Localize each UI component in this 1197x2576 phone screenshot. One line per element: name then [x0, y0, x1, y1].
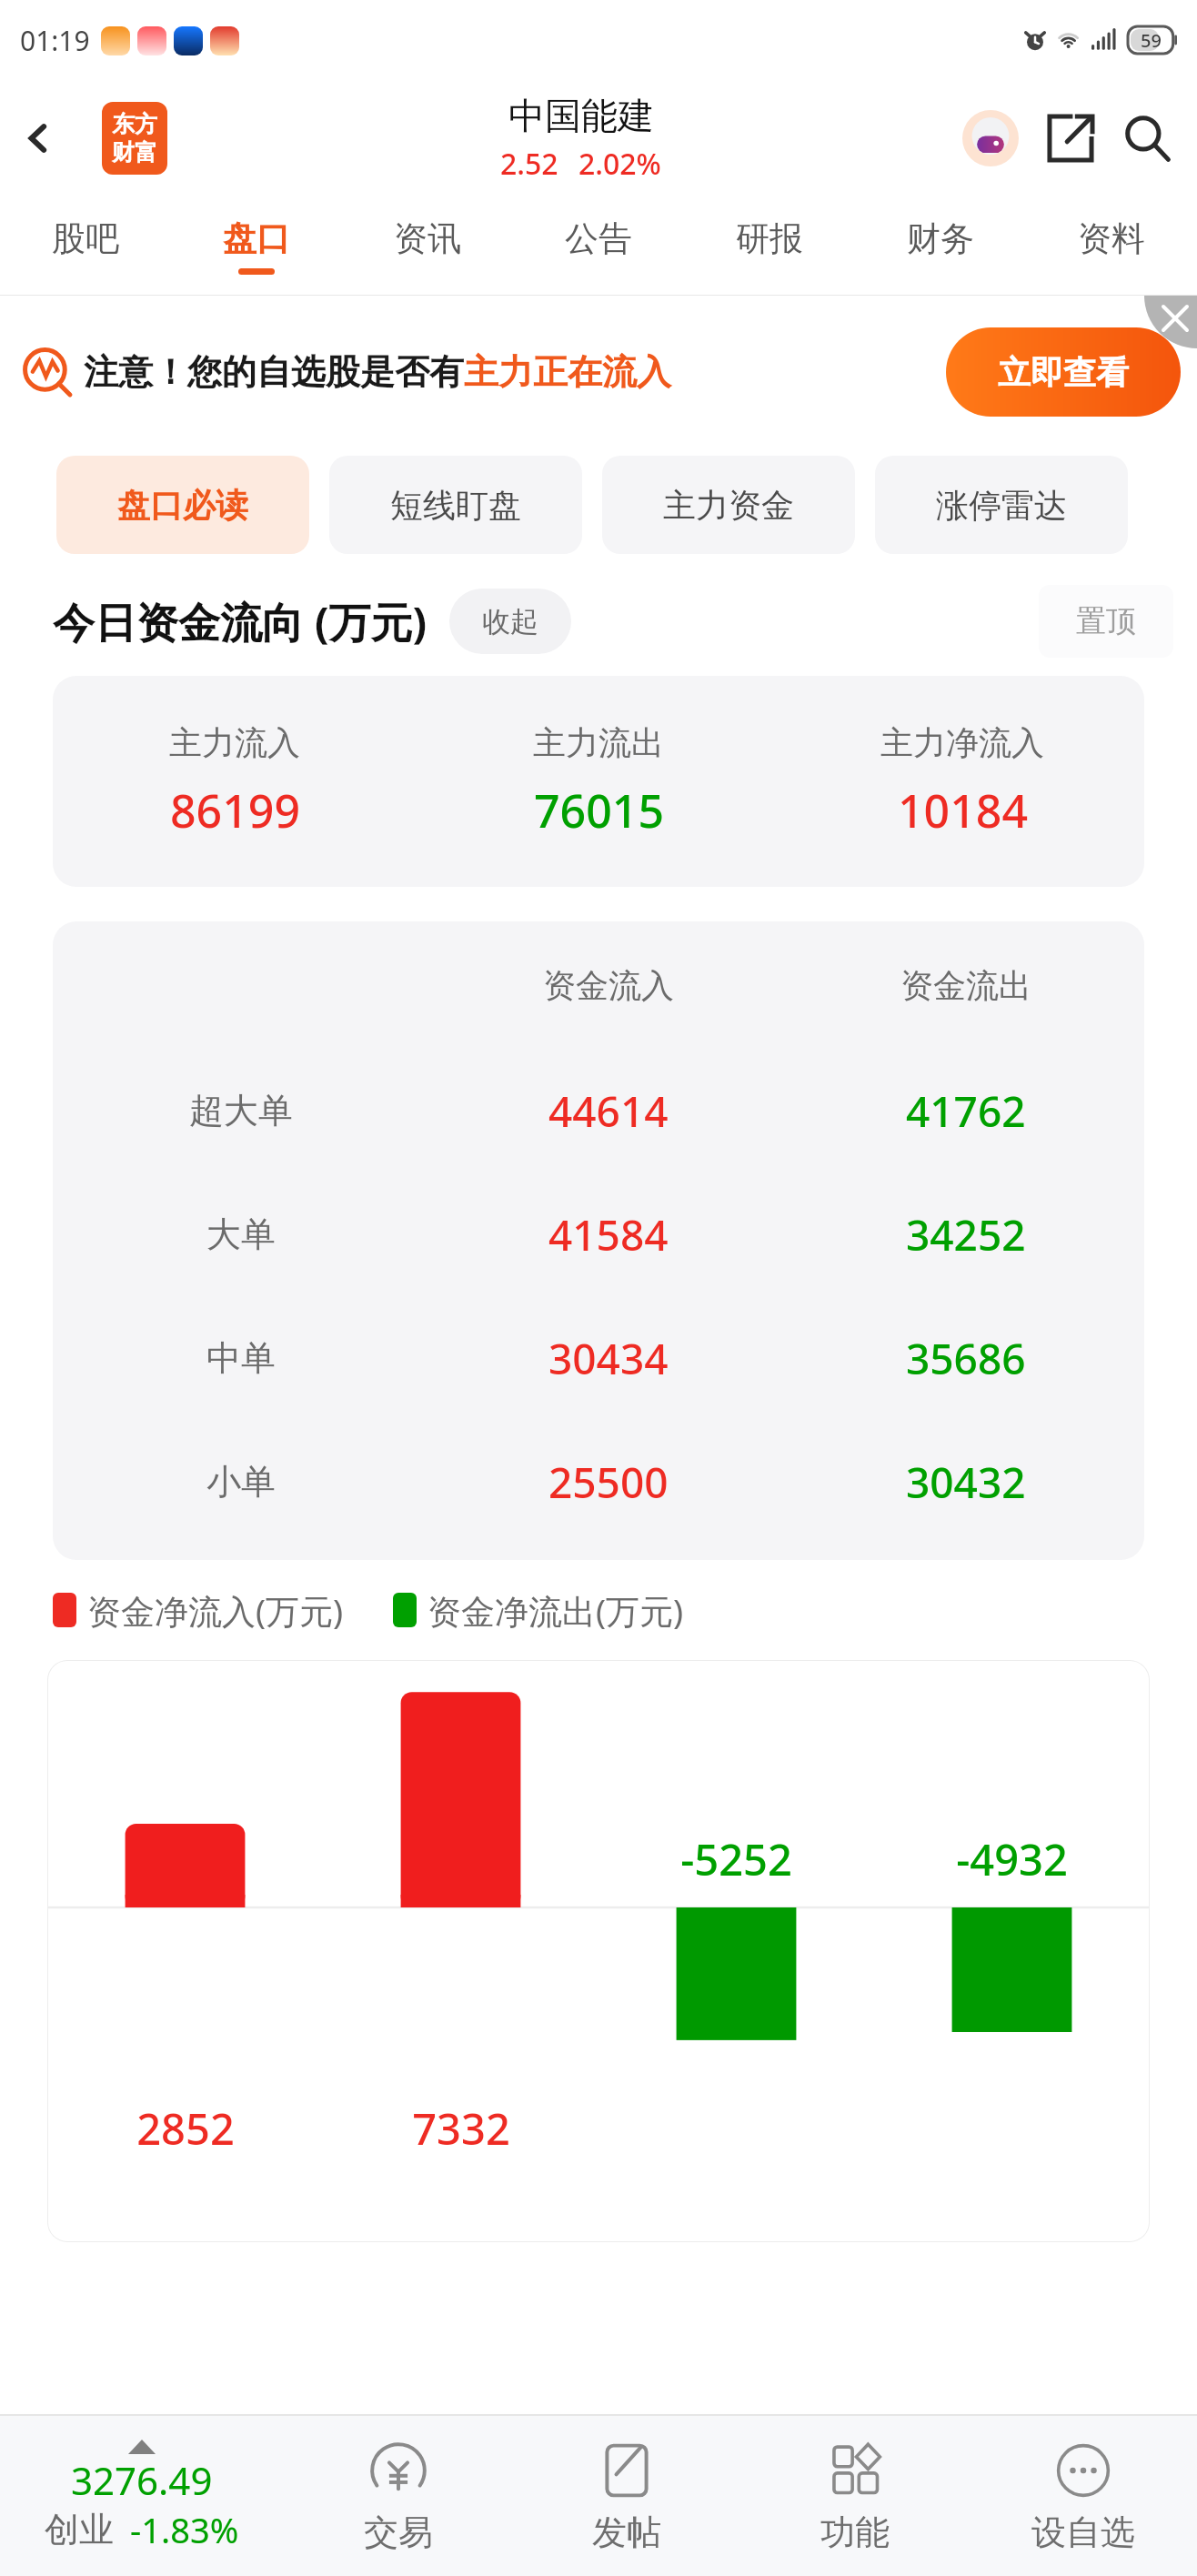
- staticText: 主力资金: [663, 485, 794, 526]
- button[interactable]: Back: [9, 109, 67, 167]
- button[interactable]: 涨停雷达: [875, 456, 1128, 554]
- staticText: 研报: [736, 217, 803, 260]
- staticText: 资金净流出(万元): [427, 1587, 684, 1634]
- staticText: 小单: [206, 1460, 276, 1504]
- button[interactable]: 收起: [449, 589, 571, 654]
- staticText: 7332: [412, 2099, 510, 2158]
- button[interactable]: 盘口必读: [56, 456, 309, 554]
- staticText: 2.52: [500, 144, 558, 184]
- staticText: 中国能建: [508, 93, 654, 138]
- staticText: 01:19: [20, 22, 90, 59]
- button[interactable]: 研报: [684, 196, 855, 295]
- staticText: 主力流出: [533, 722, 664, 763]
- staticText: 资金净流入(万元): [87, 1587, 344, 1634]
- button[interactable]: 股吧: [0, 196, 171, 295]
- staticText: 10184: [898, 780, 1028, 841]
- staticText: 2.02%: [578, 144, 661, 184]
- staticText: 30434: [548, 1330, 669, 1387]
- staticText: 设自选: [1031, 2511, 1135, 2554]
- staticText: 41584: [548, 1206, 669, 1263]
- staticText: 资料: [1078, 217, 1145, 260]
- button[interactable]: 交易: [284, 2416, 512, 2576]
- staticText: 盘口必读: [117, 485, 248, 526]
- staticText: -1.83%: [130, 2506, 239, 2553]
- staticText: 资金流入: [543, 965, 674, 1006]
- button[interactable]: 功能: [740, 2416, 969, 2576]
- button[interactable]: 短线盯盘: [329, 456, 582, 554]
- staticText: 44614: [548, 1082, 669, 1140]
- staticText: 34252: [906, 1206, 1026, 1263]
- button[interactable]: 资讯: [342, 196, 513, 295]
- button[interactable]: 公告: [513, 196, 684, 295]
- staticText: 中单: [206, 1336, 276, 1380]
- button[interactable]: 小单: [53, 1420, 1144, 1544]
- staticText: 置顶: [1076, 602, 1136, 640]
- staticText: 86199: [170, 780, 300, 841]
- staticText: -5252: [680, 1830, 792, 1888]
- button[interactable]: 东方财富: [102, 102, 167, 175]
- staticText: 资讯: [394, 217, 461, 260]
- button[interactable]: 盘口: [171, 196, 342, 295]
- staticText: 35686: [906, 1330, 1026, 1387]
- staticText: 30432: [906, 1454, 1026, 1511]
- staticText: 发帖: [592, 2511, 661, 2554]
- staticText: 收起: [482, 604, 538, 639]
- button[interactable]: Share: [1039, 106, 1102, 170]
- button[interactable]: 超大单: [53, 1049, 1144, 1172]
- staticText: 大单: [206, 1213, 276, 1256]
- staticText: 涨停雷达: [936, 485, 1067, 526]
- staticText: 2852: [136, 2099, 235, 2158]
- staticText: 76015: [534, 780, 664, 841]
- staticText: 财务: [907, 217, 974, 260]
- button[interactable]: 3276.49: [0, 2416, 284, 2576]
- button[interactable]: 大单: [53, 1172, 1144, 1296]
- staticText: -4932: [956, 1830, 1068, 1888]
- button[interactable]: 立即查看: [946, 327, 1181, 417]
- button[interactable]: 主力资金: [602, 456, 855, 554]
- staticText: 主力净流入: [880, 722, 1044, 763]
- staticText: 东方: [112, 110, 157, 138]
- button[interactable]: 财务: [855, 196, 1026, 295]
- staticText: 公告: [565, 217, 632, 260]
- staticText: 短线盯盘: [390, 485, 521, 526]
- staticText: 交易: [364, 2511, 433, 2554]
- staticText: 功能: [820, 2511, 890, 2554]
- staticText: 超大单: [189, 1089, 293, 1132]
- staticText: 25500: [548, 1454, 669, 1511]
- button[interactable]: 主力流入: [53, 676, 1144, 887]
- staticText: 注意！您的自选股是否有: [84, 350, 464, 394]
- staticText: 立即查看: [998, 352, 1129, 393]
- staticText: 盘口: [223, 217, 290, 260]
- button[interactable]: 设自选: [969, 2416, 1197, 2576]
- staticText: 创业: [45, 2508, 114, 2551]
- staticText: 今日资金流向 (万元): [53, 593, 427, 650]
- staticText: 41762: [906, 1082, 1026, 1140]
- button[interactable]: 中单: [53, 1296, 1144, 1420]
- staticText: 主力正在流入: [464, 350, 671, 394]
- button[interactable]: 资料: [1026, 196, 1197, 295]
- staticText: 财富: [112, 138, 157, 166]
- button[interactable]: 置顶: [1039, 585, 1173, 658]
- staticText: 股吧: [52, 217, 119, 260]
- staticText: 资金流出: [900, 965, 1031, 1006]
- staticText: 主力流入: [169, 722, 300, 763]
- button[interactable]: 发帖: [512, 2416, 740, 2576]
- staticText: 3276.49: [71, 2454, 213, 2506]
- staticText: 59: [1141, 28, 1162, 53]
- button[interactable]: AI assistant: [959, 106, 1022, 170]
- button[interactable]: Search: [1115, 106, 1179, 170]
- button[interactable]: Close: [1144, 296, 1197, 348]
